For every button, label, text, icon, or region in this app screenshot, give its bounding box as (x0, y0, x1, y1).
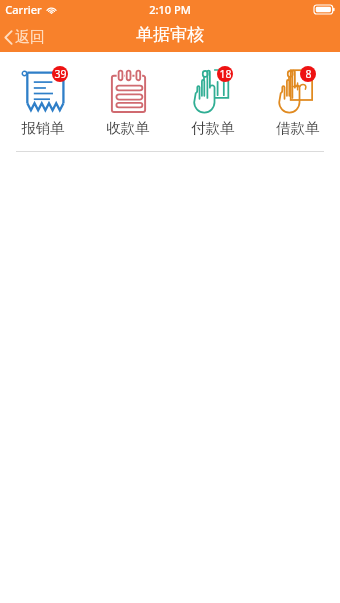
staticText: 2:10 PM (149, 2, 191, 17)
staticText: 8 (305, 67, 312, 81)
button[interactable]: 8 (255, 70, 340, 137)
button[interactable]: 39 (0, 70, 85, 137)
staticText: 收款单 (106, 119, 150, 137)
staticText: 单据审核 (136, 24, 204, 45)
staticText: 报销单 (21, 119, 65, 137)
button[interactable]: 收款单 (85, 70, 170, 137)
staticText: 返回 (15, 28, 45, 47)
staticText: 39 (54, 67, 67, 81)
button[interactable]: 返回 (0, 22, 53, 52)
staticText: 18 (219, 67, 232, 81)
button[interactable]: 18 (170, 70, 255, 137)
staticText: Carrier (5, 2, 42, 17)
staticText: 借款单 (276, 119, 320, 137)
staticText: 付款单 (191, 119, 235, 137)
